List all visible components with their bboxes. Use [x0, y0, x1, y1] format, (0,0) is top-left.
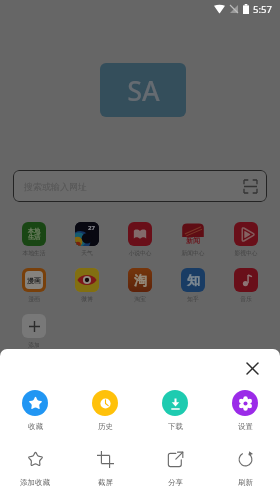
- button[interactable]: 下载: [140, 390, 210, 431]
- button[interactable]: 搜索或输入网址: [13, 170, 267, 202]
- staticText: 历史: [98, 422, 113, 431]
- staticText: 添加: [28, 341, 40, 348]
- staticText: 收藏: [28, 422, 43, 431]
- staticText: 新闻中心: [181, 249, 205, 256]
- button[interactable]: Scan QR code: [244, 180, 257, 193]
- staticText: 漫画: [27, 276, 41, 285]
- button[interactable]: 添加: [8, 314, 60, 348]
- staticText: 新闻: [186, 236, 200, 245]
- button[interactable]: 微博: [61, 268, 113, 302]
- staticText: 5:57: [253, 3, 272, 16]
- staticText: 下载: [168, 422, 183, 431]
- button[interactable]: 新闻: [167, 222, 219, 256]
- button[interactable]: 截屏: [70, 450, 140, 487]
- staticText: 漫画: [28, 295, 40, 302]
- button[interactable]: 音乐: [220, 268, 272, 302]
- button[interactable]: 27: [61, 222, 113, 256]
- staticText: 淘: [134, 272, 147, 288]
- staticText: 本地 生活: [28, 227, 40, 241]
- staticText: 音乐: [240, 295, 252, 302]
- staticText: 微博: [81, 295, 93, 302]
- staticText: 本地生活: [22, 249, 46, 256]
- staticText: 27: [88, 224, 95, 232]
- staticText: 设置: [238, 422, 253, 431]
- staticText: 天气: [81, 249, 93, 256]
- button[interactable]: 历史: [70, 390, 140, 431]
- button[interactable]: 分享: [140, 450, 210, 487]
- staticText: 刷新: [238, 478, 253, 487]
- staticText: 知乎: [187, 295, 199, 302]
- button[interactable]: 影视中心: [220, 222, 272, 256]
- button[interactable]: 知: [167, 268, 219, 302]
- button[interactable]: 漫画: [8, 268, 60, 302]
- staticText: 知: [187, 272, 200, 288]
- button[interactable]: 本地 生活: [8, 222, 60, 256]
- staticText: 小说中心: [128, 249, 152, 256]
- staticText: 截屏: [98, 478, 113, 487]
- button[interactable]: 添加收藏: [0, 450, 70, 487]
- staticText: 搜索或输入网址: [24, 181, 87, 192]
- button[interactable]: Close: [240, 356, 264, 380]
- staticText: 淘宝: [134, 295, 146, 302]
- button[interactable]: 刷新: [210, 450, 280, 487]
- staticText: 分享: [168, 478, 183, 487]
- staticText: 添加收藏: [20, 478, 50, 487]
- button[interactable]: 设置: [210, 390, 280, 431]
- button[interactable]: 收藏: [0, 390, 70, 431]
- button[interactable]: 小说中心: [114, 222, 166, 256]
- staticText: SA: [127, 72, 160, 109]
- staticText: 影视中心: [234, 249, 258, 256]
- button[interactable]: 淘: [114, 268, 166, 302]
